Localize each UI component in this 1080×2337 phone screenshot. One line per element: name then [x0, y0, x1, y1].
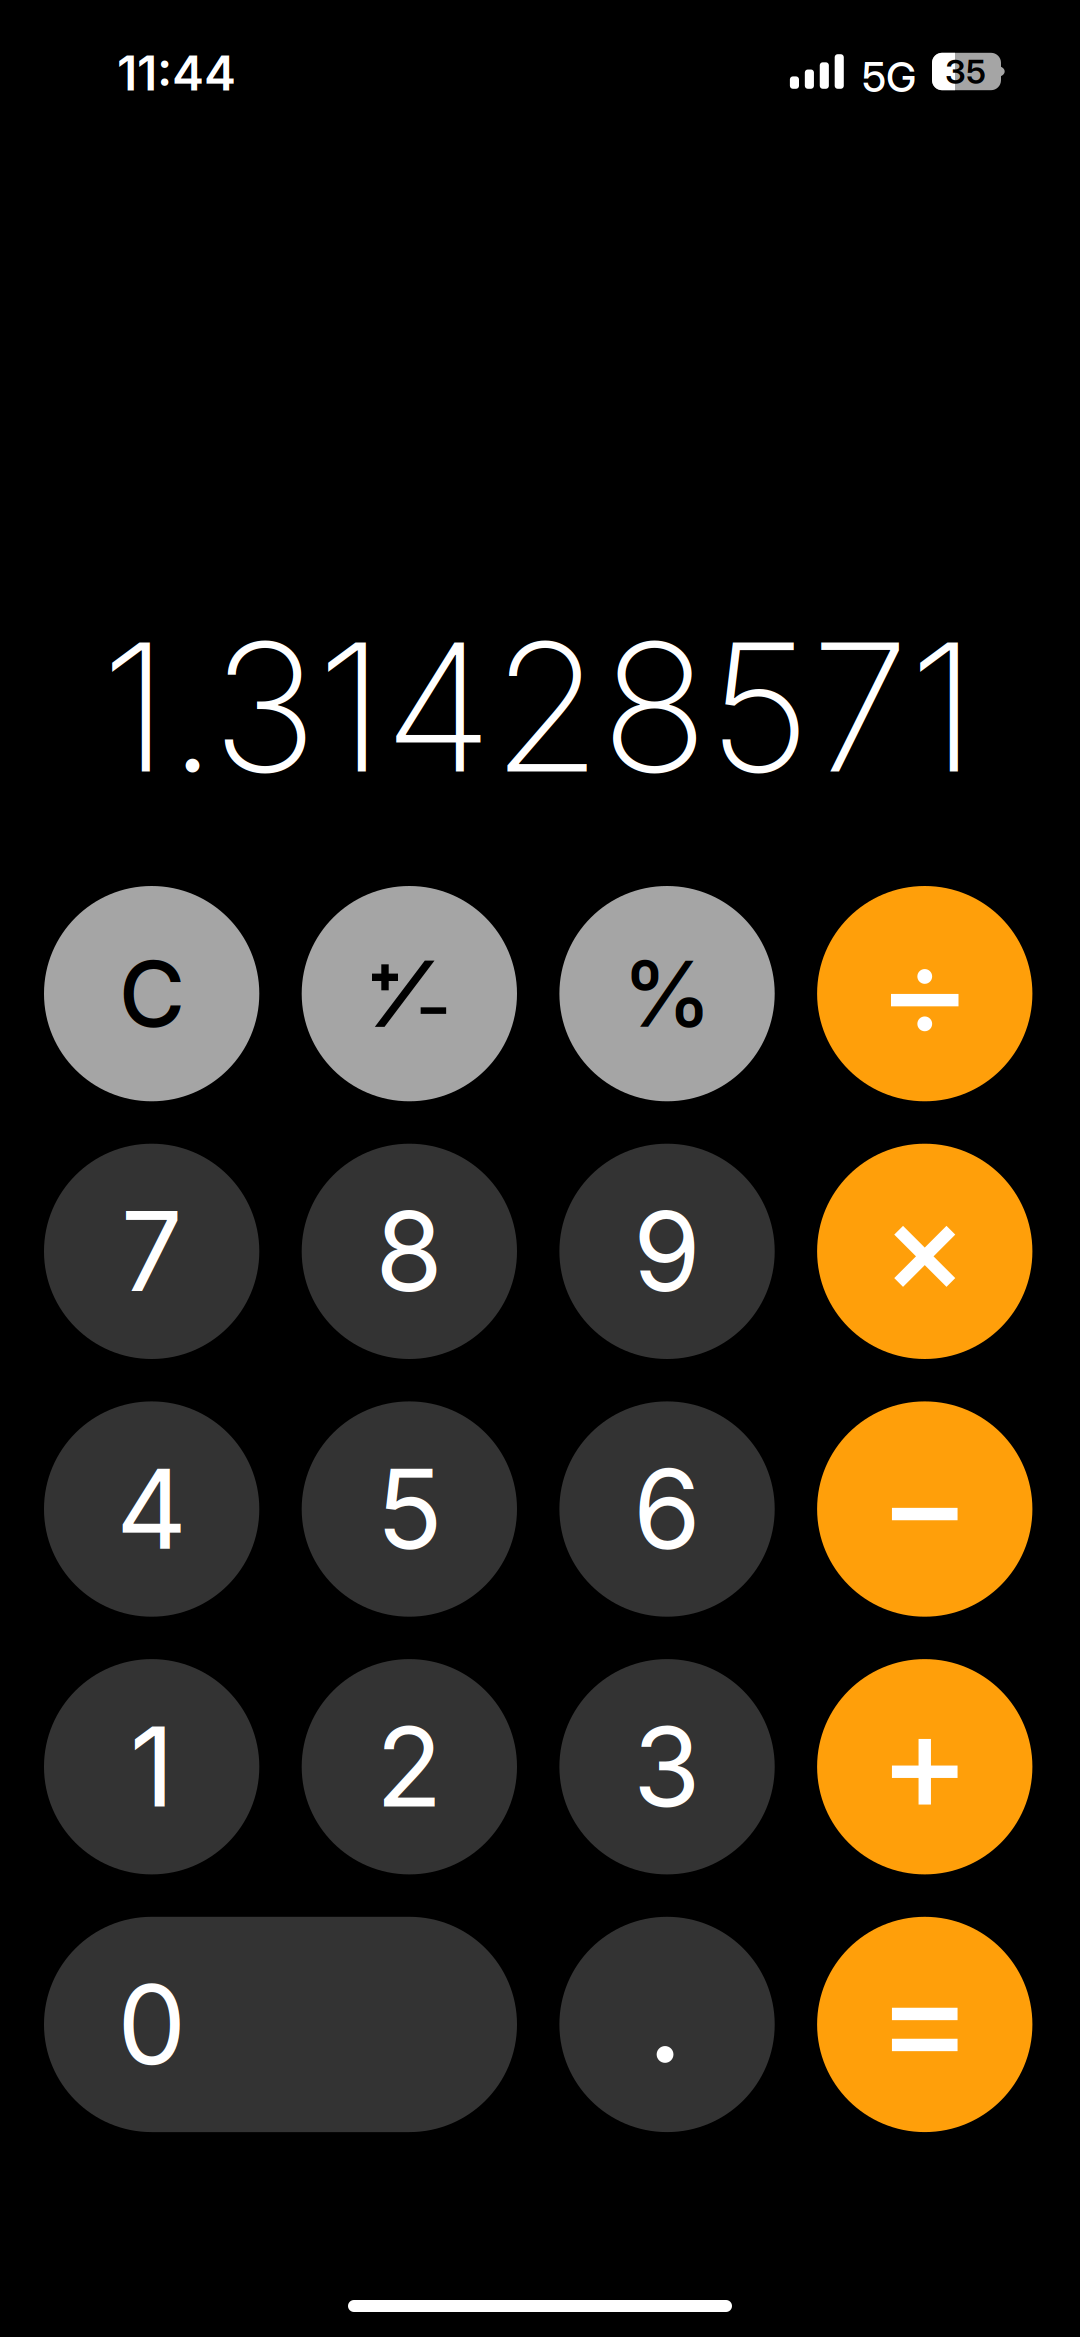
- staticText: 3: [633, 1701, 701, 1833]
- staticText: 0: [117, 1958, 186, 2091]
- button[interactable]: 2: [302, 1659, 517, 1874]
- staticText: 1: [130, 1701, 174, 1833]
- button[interactable]: 9: [559, 1144, 775, 1359]
- button[interactable]: 8: [302, 1144, 517, 1359]
- staticText: 5: [376, 1443, 442, 1575]
- button[interactable]: Plus minus: [302, 886, 517, 1101]
- staticText: 8: [375, 1185, 443, 1317]
- button[interactable]: Equals: [817, 1917, 1032, 2132]
- staticText: 35: [945, 51, 986, 92]
- staticText: 6: [633, 1443, 701, 1575]
- button[interactable]: 7: [44, 1144, 259, 1359]
- staticText: %: [622, 939, 712, 1048]
- button[interactable]: 6: [559, 1401, 775, 1617]
- staticText: 11:44: [117, 44, 236, 102]
- button[interactable]: Plus: [817, 1659, 1032, 1874]
- button[interactable]: 3: [559, 1659, 775, 1874]
- button[interactable]: 5: [302, 1401, 517, 1617]
- staticText: 7: [121, 1185, 183, 1317]
- button[interactable]: C: [44, 886, 259, 1101]
- button[interactable]: 1: [44, 1659, 259, 1874]
- button[interactable]: Minus: [817, 1401, 1032, 1617]
- button[interactable]: %: [559, 886, 775, 1101]
- staticText: 9: [633, 1185, 701, 1317]
- staticText: 5G: [862, 52, 916, 102]
- staticText: 1.31428571: [101, 600, 976, 814]
- staticText: 4: [116, 1443, 187, 1575]
- button[interactable]: Divide: [817, 886, 1032, 1101]
- button[interactable]: Multiply: [817, 1144, 1032, 1359]
- button[interactable]: 0: [44, 1917, 517, 2132]
- staticText: 2: [376, 1701, 443, 1833]
- button[interactable]: Decimal point: [559, 1917, 775, 2132]
- button[interactable]: 4: [44, 1401, 259, 1617]
- staticText: C: [119, 939, 185, 1048]
